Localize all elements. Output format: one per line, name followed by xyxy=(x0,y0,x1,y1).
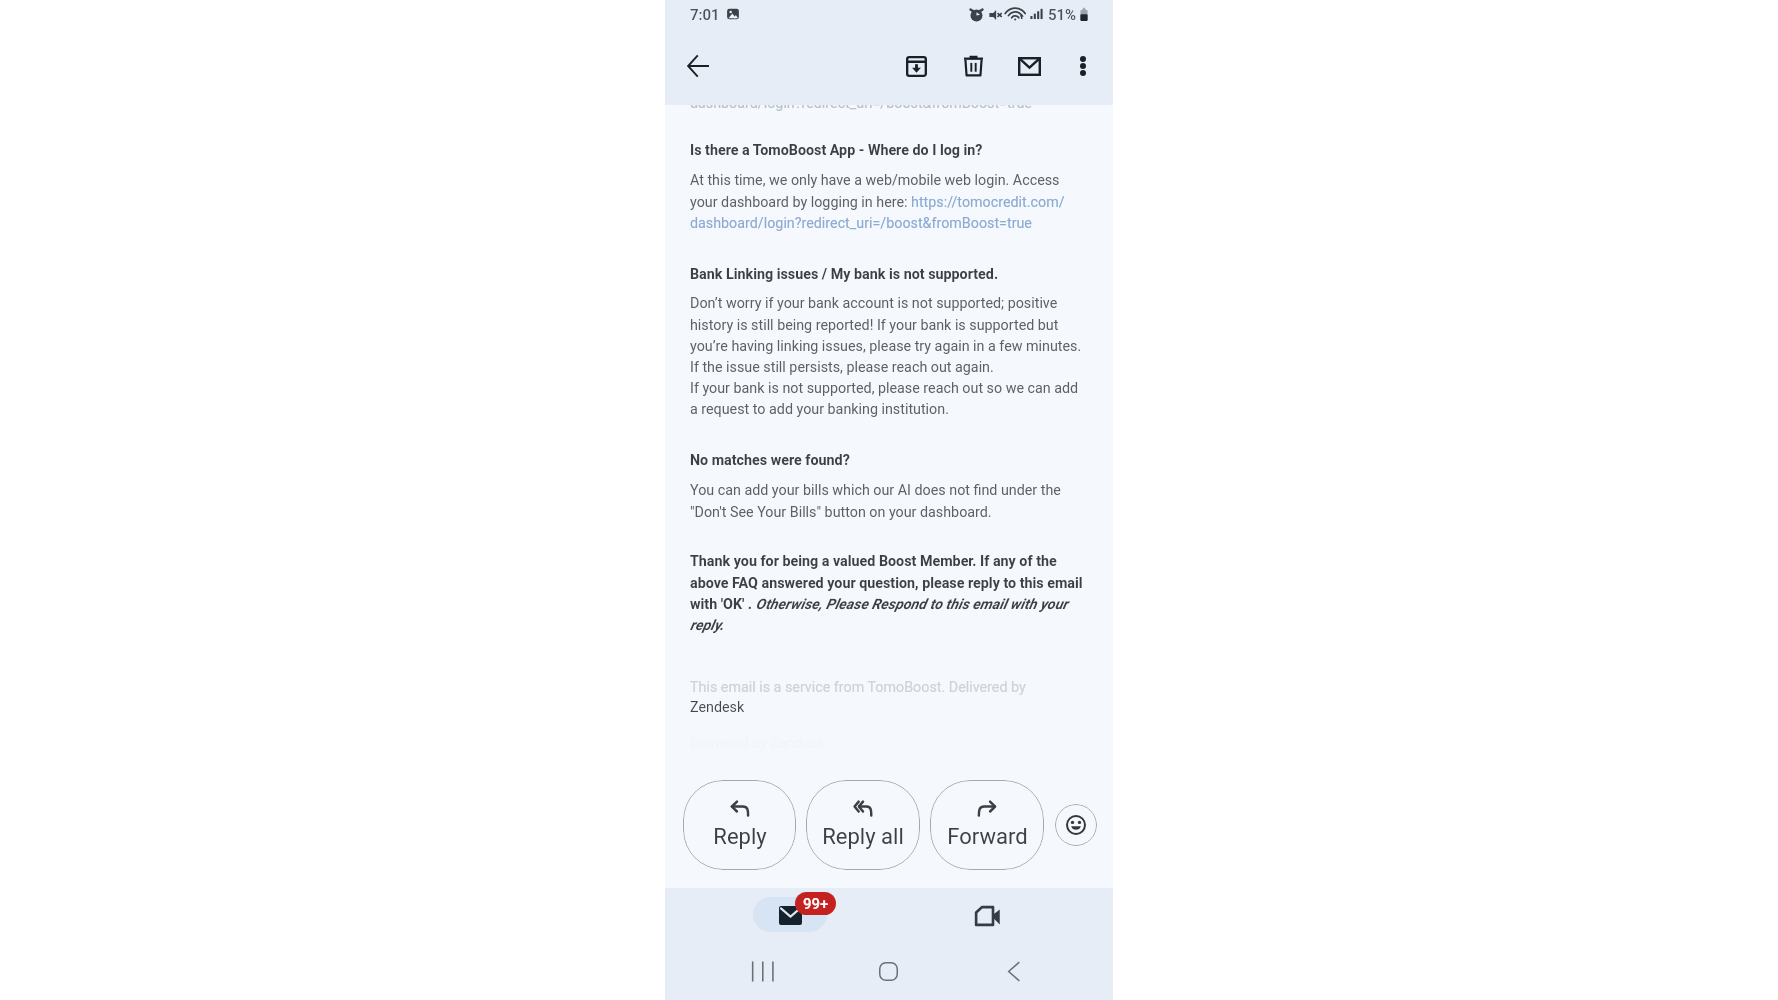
staticText: Reply xyxy=(713,824,767,850)
staticText: 7:01 xyxy=(690,6,720,24)
button[interactable]: Add emoji reaction xyxy=(1055,804,1097,846)
staticText: Reply all xyxy=(822,824,904,850)
button[interactable]: Reply all xyxy=(806,780,920,870)
button[interactable]: Mark as unread xyxy=(1008,45,1050,87)
button[interactable]: Meet xyxy=(950,897,1024,932)
staticText: No matches were found? xyxy=(690,452,850,469)
staticText: 51% xyxy=(1048,6,1077,24)
staticText: Is there a TomoBoost App - Where do I lo… xyxy=(690,142,983,159)
button[interactable]: Mail xyxy=(753,897,827,932)
staticText: This email is a service from TomoBoost. … xyxy=(690,679,1026,696)
staticText: Thank you for being a valued Boost Membe… xyxy=(690,553,1084,633)
button[interactable]: Back xyxy=(992,949,1036,993)
staticText: At this time, we only have a web/mobile … xyxy=(690,172,1084,231)
button[interactable]: Recents xyxy=(740,949,784,993)
staticText: 99+ xyxy=(803,895,829,913)
staticText: You can add your bills which our AI does… xyxy=(690,482,1084,520)
button[interactable]: Delete xyxy=(952,45,994,87)
staticText: Don’t worry if your bank account is not … xyxy=(690,295,1084,417)
button[interactable]: Archive xyxy=(895,45,937,87)
button[interactable]: Back xyxy=(677,45,719,87)
staticText: Zendesk xyxy=(690,699,745,716)
staticText: dashboard/login?redirect_uri=/boost&from… xyxy=(690,95,1032,112)
button[interactable]: Reply xyxy=(683,780,796,870)
staticText: Forward xyxy=(947,824,1028,850)
button[interactable]: Home xyxy=(866,949,910,993)
staticText: Bank Linking issues / My bank is not sup… xyxy=(690,266,999,283)
button[interactable]: Forward xyxy=(930,780,1044,870)
button[interactable]: More options xyxy=(1062,45,1104,87)
